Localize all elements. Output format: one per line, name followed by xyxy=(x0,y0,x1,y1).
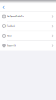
staticText: Support Us xyxy=(7,45,16,47)
button[interactable]: Back xyxy=(0,3,7,11)
staticText: Feedback xyxy=(7,25,15,27)
staticText: About xyxy=(7,35,12,37)
button[interactable]: Support Us xyxy=(0,41,56,50)
staticText: Get Tips and Tricks Pro xyxy=(7,15,24,17)
button[interactable]: Feedback xyxy=(0,21,56,31)
button[interactable]: About xyxy=(0,31,56,41)
button[interactable]: Get Tips and Tricks Pro xyxy=(0,12,56,21)
